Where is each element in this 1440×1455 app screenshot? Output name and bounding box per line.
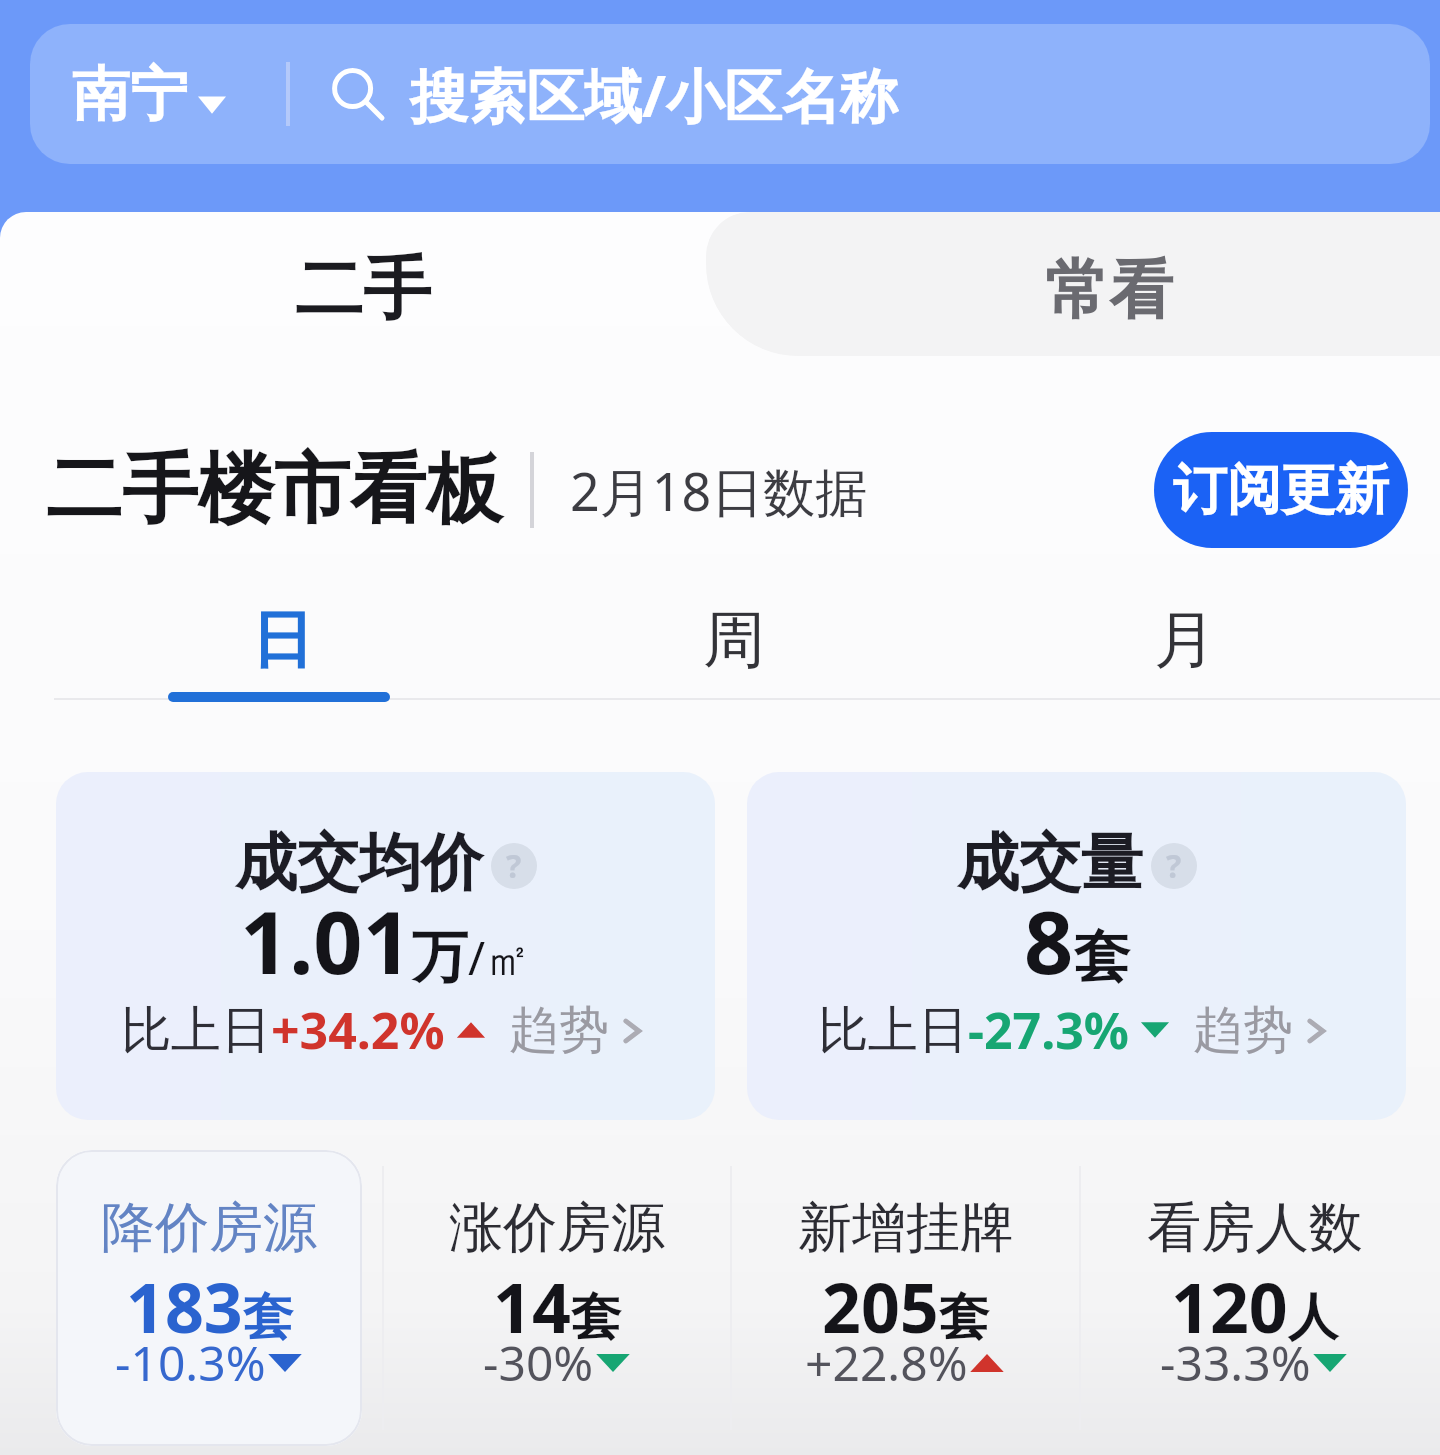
staticText: 套 [243, 1286, 293, 1349]
staticText: 新增挂牌 [798, 1194, 1014, 1262]
staticText: 14 [493, 1260, 571, 1353]
staticText: 套 [939, 1286, 989, 1349]
staticText: 涨价房源 [449, 1194, 665, 1262]
button[interactable]: 趋势 [1193, 999, 1335, 1062]
staticText: 二手 [295, 247, 431, 333]
button[interactable]: 成交量 [747, 772, 1406, 1120]
button[interactable]: 月 [959, 578, 1410, 702]
staticText: 8 [1024, 882, 1074, 999]
button[interactable]: 降价房源 [56, 1150, 362, 1446]
staticText: 成交均价 [235, 824, 483, 902]
staticText: 成交量 [957, 824, 1143, 902]
staticText: -10.3% [115, 1330, 266, 1395]
staticText: 比上日 [818, 999, 968, 1062]
button[interactable]: 南宁 [30, 24, 1430, 164]
staticText: -27.3% [968, 996, 1129, 1064]
staticText: 套 [1074, 922, 1130, 993]
staticText: 月 [1154, 601, 1216, 679]
staticText: 订阅更新 [1173, 456, 1389, 524]
staticText: -33.3% [1160, 1330, 1311, 1395]
staticText: 趋势 [1193, 999, 1293, 1062]
staticText: 趋势 [509, 999, 609, 1062]
button[interactable]: 看房人数 [1081, 1150, 1428, 1446]
staticText: 周 [703, 601, 765, 679]
staticText: /㎡ [468, 926, 532, 989]
staticText: 搜索区域/小区名称 [410, 55, 899, 134]
staticText: -30% [483, 1330, 594, 1395]
staticText: 比上日 [121, 999, 271, 1062]
staticText: 看房人数 [1147, 1194, 1363, 1262]
button[interactable]: 日 [56, 578, 508, 702]
button[interactable]: 周 [508, 578, 959, 702]
button[interactable]: 成交均价 [56, 772, 715, 1120]
staticText: 183 [126, 1260, 243, 1353]
button[interactable]: 关于成交量 的说明 [1151, 843, 1197, 889]
staticText: 1.01 [240, 882, 412, 999]
staticText: 人 [1288, 1286, 1338, 1349]
button[interactable]: 常看 [726, 212, 1440, 356]
staticText: 205 [822, 1260, 939, 1353]
staticText: 常看 [1045, 250, 1173, 331]
staticText: 2月18日数据 [570, 455, 868, 526]
staticText: 套 [571, 1286, 621, 1349]
button[interactable]: 订阅更新 [1154, 432, 1408, 548]
staticText: 万 [412, 922, 468, 993]
button[interactable]: 关于成交均价 的说明 [491, 843, 537, 889]
staticText: ? [506, 844, 522, 888]
staticText: 二手楼市看板 [46, 442, 502, 538]
staticText: +22.8% [805, 1330, 968, 1395]
staticText: 日 [251, 601, 313, 679]
button[interactable]: 涨价房源 [384, 1150, 730, 1446]
other: 切换城市 [198, 70, 226, 118]
staticText: 南宁 [72, 58, 188, 131]
button[interactable]: 新增挂牌 [732, 1150, 1079, 1446]
staticText: 120 [1171, 1260, 1288, 1353]
staticText: ? [1166, 844, 1182, 888]
button[interactable]: 趋势 [509, 999, 651, 1062]
staticText: 降价房源 [101, 1194, 317, 1262]
staticText: +34.2% [271, 996, 445, 1064]
other: 搜索 [328, 64, 388, 124]
button[interactable]: 二手 [0, 212, 726, 356]
